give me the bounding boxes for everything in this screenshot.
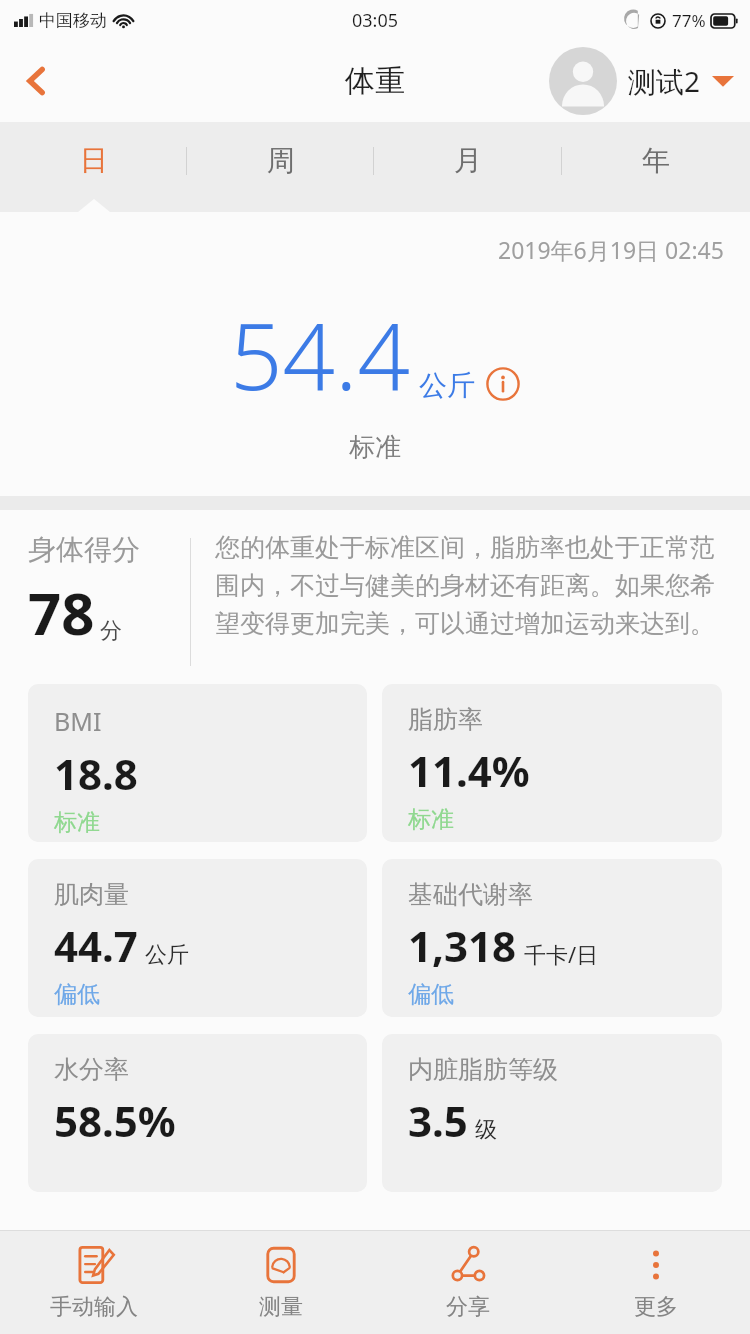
staticText: 日: [80, 143, 108, 178]
staticText: 肌肉量: [54, 879, 129, 910]
staticText: BMI: [54, 704, 102, 738]
staticText: 水分率: [54, 1054, 129, 1085]
button[interactable]: Back: [0, 40, 72, 122]
staticText: 偏低: [408, 980, 454, 1009]
staticText: 标准: [54, 808, 100, 837]
staticText: 脂肪率: [408, 704, 483, 735]
staticText: 分享: [446, 1293, 490, 1321]
staticText: 公斤: [419, 368, 475, 403]
staticText: 年: [642, 143, 670, 178]
button[interactable]: 分享: [374, 1230, 562, 1334]
staticText: 月: [454, 143, 482, 178]
staticText: 公斤: [145, 941, 189, 969]
staticText: 标准: [349, 431, 401, 464]
staticText: 2019年6月19日 02:45: [498, 234, 724, 265]
staticText: 测试2: [628, 62, 701, 100]
staticText: 44.7: [54, 917, 138, 974]
staticText: 测量: [259, 1293, 303, 1321]
staticText: 分: [100, 617, 122, 645]
staticText: 54.4: [230, 292, 411, 417]
button[interactable]: 手动输入: [0, 1230, 187, 1334]
staticText: 基础代谢率: [408, 879, 533, 910]
button[interactable]: 脂肪率: [382, 684, 722, 842]
staticText: 更多: [634, 1293, 678, 1321]
staticText: 周: [267, 143, 295, 178]
button[interactable]: 更多: [562, 1230, 750, 1334]
staticText: 18.8: [54, 745, 138, 802]
button[interactable]: 年: [562, 122, 750, 212]
staticText: 体重: [345, 62, 405, 100]
button[interactable]: 基础代谢率: [382, 859, 722, 1017]
staticText: 身体得分: [28, 532, 140, 567]
staticText: 11.4%: [408, 742, 530, 799]
staticText: 中国移动: [39, 10, 107, 31]
staticText: 手动输入: [50, 1293, 138, 1321]
staticText: 77%: [672, 9, 706, 32]
button[interactable]: 水分率: [28, 1034, 367, 1192]
staticText: 58.5%: [54, 1092, 176, 1149]
staticText: 级: [475, 1116, 497, 1144]
button[interactable]: 月: [374, 122, 562, 212]
button[interactable]: Info: [486, 367, 520, 401]
staticText: 03:05: [352, 8, 399, 33]
staticText: 78: [28, 573, 95, 652]
staticText: 1,318: [408, 917, 517, 974]
button[interactable]: BMI: [28, 684, 367, 842]
staticText: 内脏脂肪等级: [408, 1054, 558, 1085]
button[interactable]: 肌肉量: [28, 859, 367, 1017]
button[interactable]: 日: [0, 122, 187, 212]
staticText: 3.5: [408, 1092, 468, 1149]
button[interactable]: 周: [187, 122, 374, 212]
button[interactable]: 测量: [187, 1230, 374, 1334]
staticText: 偏低: [54, 980, 100, 1009]
button[interactable]: 测试2: [549, 47, 734, 115]
staticText: 千卡/日: [524, 939, 599, 969]
staticText: 您的体重处于标准区间，脂肪率也处于正常范围内，不过与健美的身材还有距离。如果您希…: [215, 532, 724, 640]
staticText: 标准: [408, 805, 454, 834]
button[interactable]: 内脏脂肪等级: [382, 1034, 722, 1192]
